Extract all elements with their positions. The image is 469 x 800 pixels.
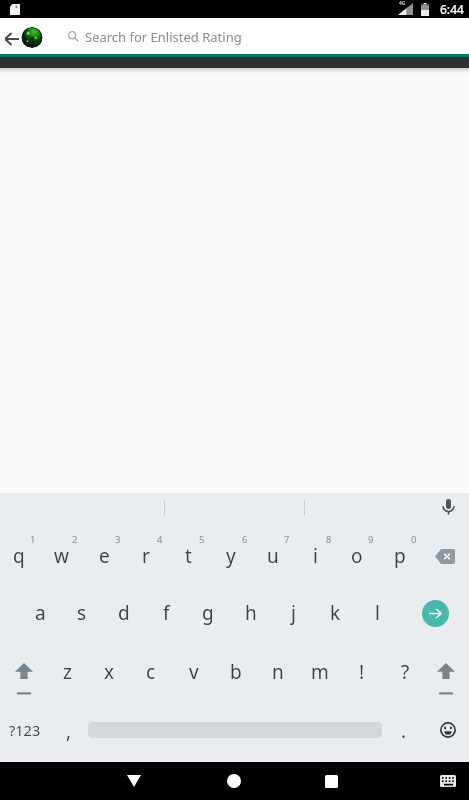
staticText: . xyxy=(401,718,407,744)
button[interactable] xyxy=(435,717,460,742)
button[interactable]: m xyxy=(292,652,348,692)
staticText: k xyxy=(330,600,341,626)
button[interactable]: o xyxy=(329,536,385,576)
button[interactable]: x xyxy=(81,652,137,692)
staticText: g xyxy=(202,600,214,626)
staticText: Search for Enlisted Rating xyxy=(85,28,242,46)
staticText: 3 xyxy=(115,533,121,546)
button[interactable]: e xyxy=(76,536,132,576)
staticText: w xyxy=(54,543,69,569)
button[interactable] xyxy=(307,762,355,800)
staticText: q xyxy=(13,543,25,569)
staticText: 9 xyxy=(368,533,374,546)
staticText: f xyxy=(163,600,170,626)
button[interactable] xyxy=(436,495,460,519)
staticText: r xyxy=(142,543,150,569)
button[interactable]: ! xyxy=(334,652,390,692)
staticText: y xyxy=(226,543,236,569)
button[interactable] xyxy=(0,20,24,57)
staticText: o xyxy=(351,543,363,569)
button[interactable]: h xyxy=(223,593,279,633)
staticText: a xyxy=(35,600,46,626)
button[interactable]: v xyxy=(166,652,222,692)
button[interactable] xyxy=(432,762,464,800)
button[interactable]: ?123 xyxy=(0,710,50,750)
staticText: 4G xyxy=(399,0,406,7)
button[interactable]: ? xyxy=(377,652,433,692)
staticText: 2 xyxy=(72,533,78,546)
button[interactable]: g xyxy=(180,593,236,633)
button[interactable]: i xyxy=(287,536,343,576)
staticText: 6 xyxy=(242,533,248,546)
button[interactable] xyxy=(430,655,462,697)
staticText: 4 xyxy=(157,533,163,546)
button[interactable]: b xyxy=(208,652,264,692)
staticText: e xyxy=(99,543,110,569)
button[interactable] xyxy=(110,762,158,800)
staticText: l xyxy=(375,600,380,626)
button[interactable]: a xyxy=(12,593,68,633)
staticText: 5 xyxy=(199,533,205,546)
button[interactable] xyxy=(8,655,40,697)
staticText: n xyxy=(272,659,284,685)
button[interactable] xyxy=(422,600,449,627)
staticText: m xyxy=(311,659,329,685)
button[interactable]: r xyxy=(118,536,174,576)
staticText: 1 xyxy=(30,533,36,546)
staticText: x xyxy=(104,659,115,685)
button[interactable]: k xyxy=(307,593,363,633)
staticText: 7 xyxy=(284,533,290,546)
button[interactable]: p xyxy=(372,536,428,576)
button[interactable]: d xyxy=(96,593,152,633)
staticText: z xyxy=(63,659,72,685)
button[interactable]: n xyxy=(250,652,306,692)
button[interactable]: , xyxy=(41,711,97,751)
staticText: d xyxy=(118,600,130,626)
button[interactable]: z xyxy=(39,652,95,692)
staticText: j xyxy=(291,600,296,626)
button[interactable]: Search for Enlisted Rating xyxy=(60,18,469,55)
button[interactable]: c xyxy=(123,652,179,692)
staticText: ! xyxy=(359,659,365,685)
button[interactable]: w xyxy=(33,536,89,576)
button[interactable]: l xyxy=(349,593,405,633)
button[interactable]: f xyxy=(138,593,194,633)
button[interactable]: q xyxy=(0,536,47,576)
button[interactable] xyxy=(210,762,258,800)
staticText: t xyxy=(185,543,192,569)
staticText: u xyxy=(267,543,279,569)
button[interactable]: s xyxy=(54,593,110,633)
staticText: 6:44 xyxy=(440,1,464,17)
button[interactable]: u xyxy=(245,536,301,576)
staticText: h xyxy=(245,600,257,626)
button[interactable]: t xyxy=(160,536,216,576)
button[interactable]: j xyxy=(265,593,321,633)
staticText: 0 xyxy=(411,533,417,546)
staticText: b xyxy=(230,659,242,685)
button[interactable]: . xyxy=(376,711,432,751)
staticText: i xyxy=(313,543,318,569)
staticText: , xyxy=(66,718,72,744)
button[interactable] xyxy=(21,27,43,48)
staticText: s xyxy=(77,600,87,626)
staticText: p xyxy=(394,543,406,569)
staticText: v xyxy=(189,659,199,685)
staticText: c xyxy=(146,659,156,685)
button[interactable]: y xyxy=(203,536,259,576)
button[interactable] xyxy=(424,535,466,577)
staticText: ? xyxy=(401,659,410,685)
staticText: 8 xyxy=(326,533,332,546)
staticText: ?123 xyxy=(9,720,41,740)
